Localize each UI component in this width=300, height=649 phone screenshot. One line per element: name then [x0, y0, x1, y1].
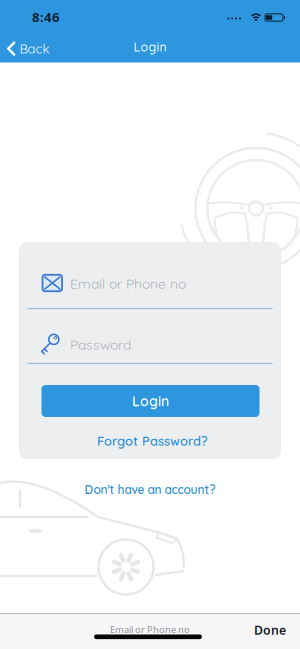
staticText: Password [70, 336, 131, 353]
staticText: Back [19, 40, 49, 57]
button[interactable]: Email or Phone no [27, 265, 272, 309]
button[interactable]: Back [12, 33, 56, 63]
staticText: Done [254, 622, 286, 638]
staticText: Don't have an account? [84, 482, 215, 497]
staticText: Email or Phone no [70, 275, 186, 292]
staticText: Email or Phone no [110, 623, 190, 636]
button[interactable]: Forgot Password? [97, 433, 208, 449]
staticText: Login [132, 392, 169, 410]
button[interactable]: Email or Phone no [95, 619, 205, 639]
button[interactable]: Don't have an account? [84, 482, 215, 497]
staticText: 8:46 [32, 8, 60, 26]
staticText: Login [133, 39, 166, 55]
button[interactable]: Login [41, 385, 259, 417]
staticText: Forgot Password? [97, 433, 208, 449]
button[interactable]: Password [27, 325, 272, 369]
button[interactable]: Done [245, 616, 295, 644]
